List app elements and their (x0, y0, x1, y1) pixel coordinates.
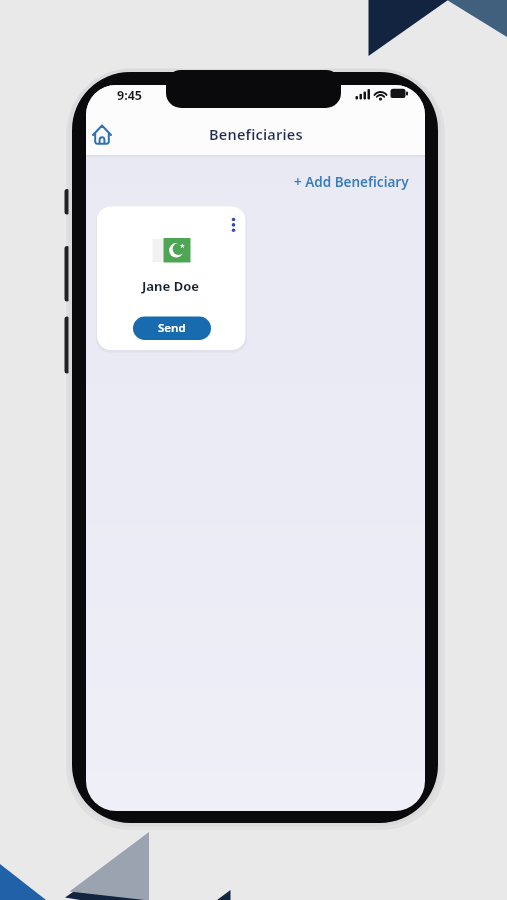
staticText: 9:45 (117, 87, 142, 104)
staticText: Beneficiaries (209, 124, 303, 144)
staticText: Jane Doe (142, 277, 200, 295)
staticText: Send (158, 320, 186, 336)
staticText: + Add Beneficiary (294, 173, 409, 191)
